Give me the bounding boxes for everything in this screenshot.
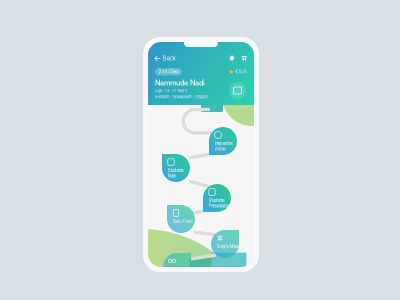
button[interactable]: Single Menu — [211, 230, 239, 258]
button[interactable]: Interactive — [209, 127, 237, 155]
staticText: 2nd Class — [158, 69, 178, 74]
staticText: Interactive — [214, 141, 232, 146]
staticText: Test / Time — [172, 219, 192, 224]
staticText: Students — [167, 168, 183, 173]
staticText: Presentation — [208, 203, 229, 208]
staticText: Age : 14-17 Years — [155, 88, 187, 93]
staticText: Students — [208, 198, 224, 203]
button[interactable]: Back — [155, 55, 176, 62]
button[interactable]: Notifications — [229, 55, 234, 61]
staticText: Back — [163, 55, 176, 62]
staticText: Video — [214, 146, 225, 151]
button[interactable]: 2nd Class — [155, 68, 182, 76]
button[interactable]: Students — [203, 184, 231, 212]
button[interactable]: Students — [162, 154, 190, 182]
staticText: Note — [167, 173, 175, 178]
staticText: Medium : Malayalam / English — [155, 94, 208, 99]
staticText: 4.5/5 — [235, 69, 247, 74]
button[interactable]: Cart — [241, 55, 247, 61]
button[interactable] — [163, 253, 191, 281]
staticText: Nammude Nadi — [155, 78, 205, 87]
staticText: Single Menu — [216, 244, 239, 249]
button[interactable]: Test / Time — [167, 205, 195, 233]
